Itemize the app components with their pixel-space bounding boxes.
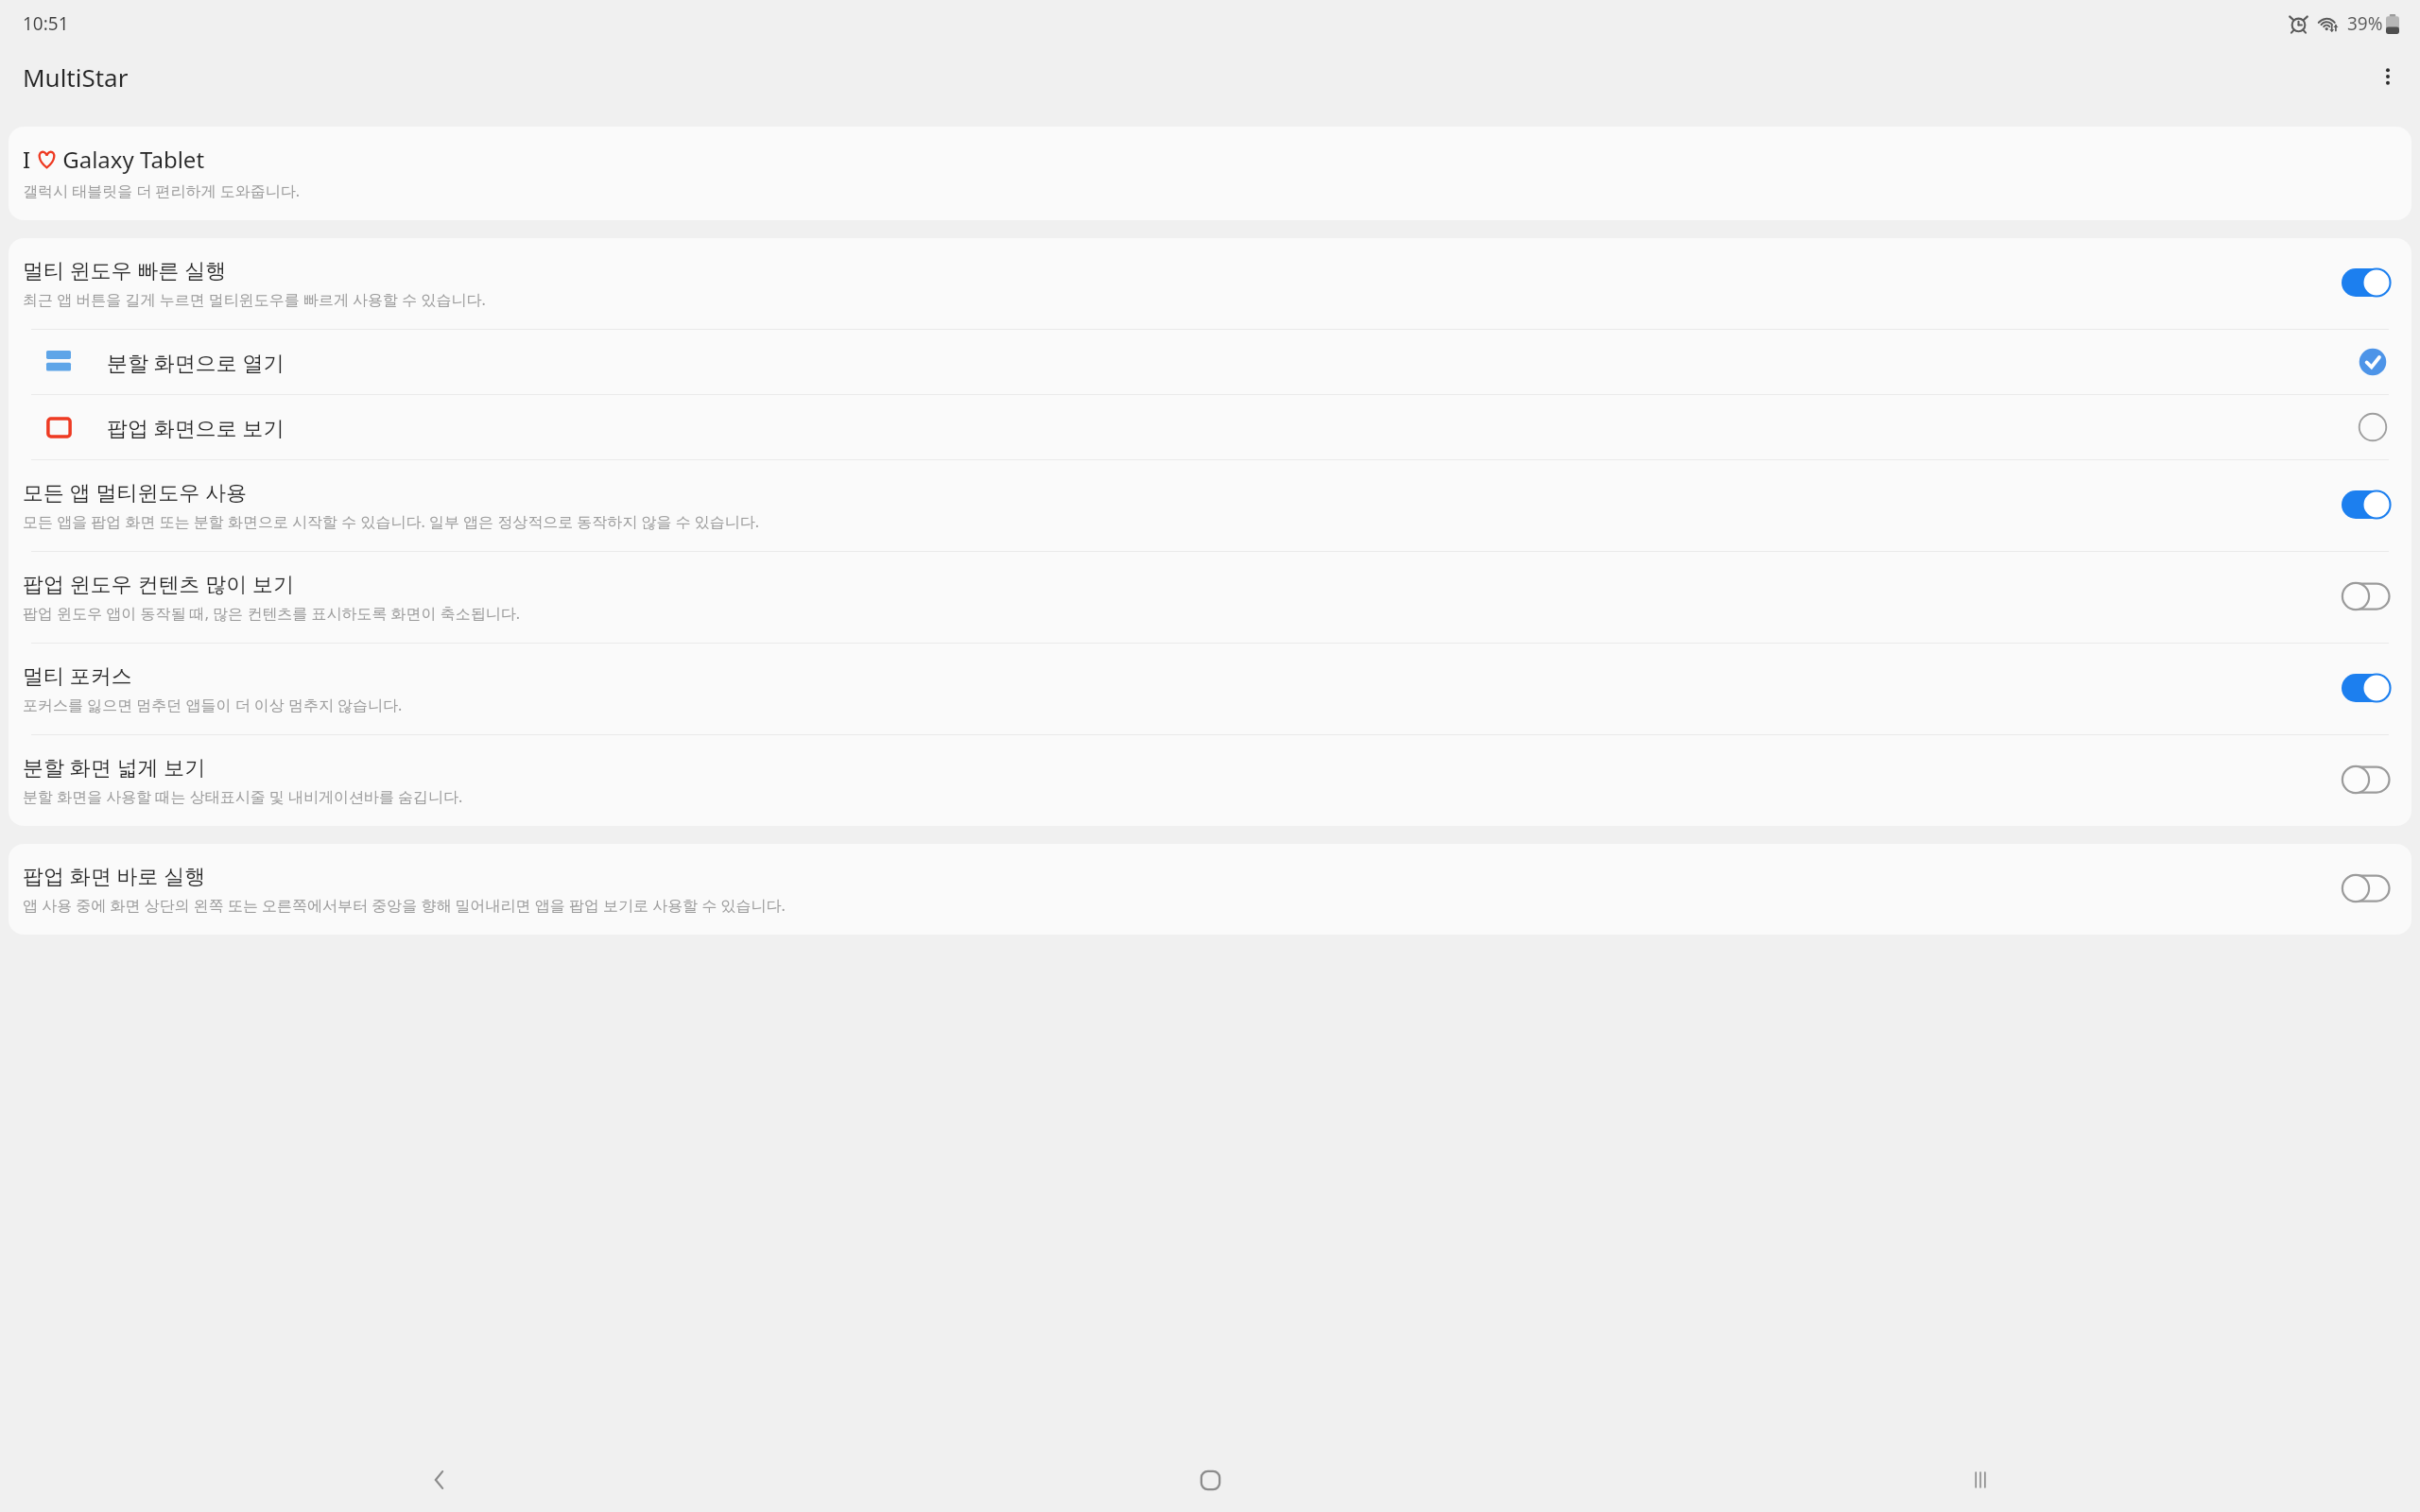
button[interactable]: Off xyxy=(2342,765,2391,794)
button[interactable]: On xyxy=(2342,268,2391,297)
button[interactable]: On xyxy=(2342,674,2391,702)
button[interactable]: 분할 화면으로 열기 xyxy=(9,330,2411,394)
button[interactable]: 멀티 윈도우 빠른 실행 xyxy=(9,238,2411,329)
button[interactable]: Off xyxy=(2342,582,2391,610)
staticText: 분할 화면을 사용할 때는 상태표시줄 및 내비게이션바를 숨깁니다. xyxy=(23,786,463,807)
staticText: 최근 앱 버튼을 길게 누르면 멀티윈도우를 빠르게 사용할 수 있습니다. xyxy=(23,289,486,310)
button[interactable]: 모든 앱 멀티윈도우 사용 xyxy=(9,460,2411,551)
staticText: 팝업 화면으로 보기 xyxy=(107,413,2357,441)
staticText: 포커스를 잃으면 멈추던 앱들이 더 이상 멈추지 않습니다. xyxy=(23,695,403,715)
staticText: Galaxy Tablet xyxy=(57,144,205,175)
button[interactable]: I xyxy=(9,127,2411,220)
button[interactable]: 팝업 윈도우 컨텐츠 많이 보기 xyxy=(9,552,2411,643)
staticText: 앱 사용 중에 화면 상단의 왼쪽 또는 오른쪽에서부터 중앙을 향해 밀어내리… xyxy=(23,895,786,916)
staticText: 10:51 xyxy=(23,11,69,36)
button[interactable]: Home xyxy=(1184,1453,1236,1506)
staticText: 멀티 윈도우 빠른 실행 xyxy=(23,255,227,283)
button[interactable]: 팝업 화면 바로 실행 xyxy=(9,844,2411,935)
button[interactable]: Off xyxy=(2342,874,2391,902)
staticText: 분할 화면 넓게 보기 xyxy=(23,752,206,781)
staticText: 팝업 화면 바로 실행 xyxy=(23,861,206,889)
staticText: 멀티 포커스 xyxy=(23,661,132,689)
button[interactable]: Selected xyxy=(2357,346,2389,378)
staticText: 팝업 윈도우 앱이 동작될 때, 많은 컨텐츠를 표시하도록 화면이 축소됩니다… xyxy=(23,603,521,624)
button[interactable]: 팝업 화면으로 보기 xyxy=(9,395,2411,459)
staticText: 모든 앱을 팝업 화면 또는 분할 화면으로 시작할 수 있습니다. 일부 앱은… xyxy=(23,511,760,532)
staticText: I xyxy=(23,144,37,175)
staticText: 모든 앱 멀티윈도우 사용 xyxy=(23,477,248,506)
button[interactable]: Back xyxy=(413,1453,466,1506)
button[interactable]: Not selected xyxy=(2357,411,2389,443)
staticText: 팝업 윈도우 컨텐츠 많이 보기 xyxy=(23,569,294,597)
button[interactable]: 분할 화면 넓게 보기 xyxy=(9,735,2411,826)
button[interactable]: On xyxy=(2342,490,2391,519)
staticText: MultiStar xyxy=(23,60,129,94)
staticText: 39% xyxy=(2347,11,2383,36)
staticText: 갤럭시 태블릿을 더 편리하게 도와줍니다. xyxy=(23,180,300,201)
button[interactable]: 멀티 포커스 xyxy=(9,644,2411,734)
staticText: 분할 화면으로 열기 xyxy=(107,348,2357,376)
button[interactable]: More options xyxy=(2365,54,2411,99)
button[interactable]: Recent apps xyxy=(1954,1453,2007,1506)
